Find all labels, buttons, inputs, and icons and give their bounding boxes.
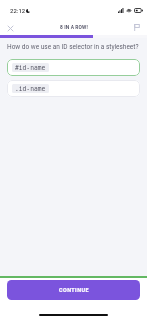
staticText: .id-name — [15, 85, 46, 92]
button[interactable]: #id-name — [7, 59, 140, 76]
button[interactable]: .id-name — [7, 80, 140, 97]
button[interactable]: Report — [127, 18, 147, 36]
staticText: #id-name — [15, 64, 46, 71]
button[interactable]: CONTINUE — [7, 280, 140, 300]
button[interactable]: Close — [0, 19, 20, 37]
staticText: 22:12 — [10, 7, 26, 14]
staticText: How do we use an ID selector in a styles… — [7, 43, 139, 51]
staticText: 8 IN A ROW! — [60, 24, 88, 30]
staticText: CONTINUE — [59, 287, 89, 293]
